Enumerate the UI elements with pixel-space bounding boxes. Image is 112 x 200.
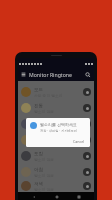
button[interactable]: Menu [20, 71, 27, 78]
staticText: Monitor Ringtone [29, 71, 72, 78]
staticText: 저장 · 내파일 · 기기메모리 [40, 129, 77, 133]
button[interactable]: More options [83, 136, 91, 144]
button[interactable]: More options [83, 182, 91, 190]
staticText: Cancel [73, 139, 85, 144]
button[interactable]: More options [83, 104, 91, 112]
button[interactable]: 모드 [18, 84, 94, 100]
button[interactable]: More options [83, 120, 91, 128]
button[interactable]: Home [53, 193, 60, 200]
button[interactable]: 토킹 [18, 148, 94, 164]
staticText: 토킹 [34, 151, 43, 157]
button[interactable]: More options [83, 168, 91, 176]
staticText: 진동 [34, 103, 43, 109]
button[interactable]: 알림 [18, 132, 94, 148]
button[interactable]: 진동 [18, 100, 94, 116]
button[interactable]: 무음 [18, 116, 94, 132]
button[interactable]: Search [83, 70, 92, 79]
button[interactable]: Back [30, 193, 37, 200]
staticText: 무음 [34, 119, 43, 125]
staticText: 모드 [34, 87, 43, 93]
button[interactable]: More options [83, 88, 91, 96]
staticText: 벨소리 없음 [34, 125, 54, 130]
staticText: 저녁 [34, 181, 43, 187]
button[interactable]: More options [83, 152, 91, 160]
staticText: 아침 [34, 167, 43, 173]
button[interactable]: Recents [75, 193, 82, 200]
button[interactable]: Cancel [71, 139, 87, 144]
button[interactable]: 저녁 [18, 180, 94, 192]
button[interactable]: Menu [18, 68, 94, 81]
staticText: 벨소리를 선택하세요 [40, 122, 78, 127]
button[interactable]: 아침 [18, 164, 94, 180]
